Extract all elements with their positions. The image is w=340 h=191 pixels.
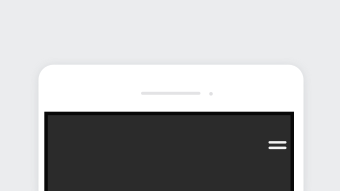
button[interactable]: Menu: [261, 130, 293, 160]
